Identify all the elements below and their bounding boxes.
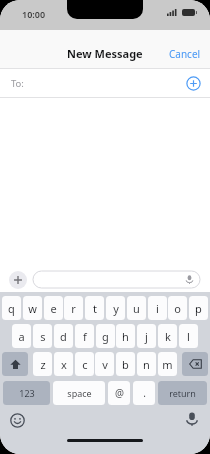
button[interactable]: Dictate [33,271,200,288]
button[interactable]: h [116,324,135,348]
button[interactable]: . [133,381,155,405]
button[interactable]: e [44,296,63,320]
button[interactable]: m [158,352,177,376]
button[interactable]: 123 [3,381,50,405]
staticText: k [165,329,171,344]
staticText: space [67,387,92,399]
button[interactable]: r [64,296,83,320]
staticText: o [174,301,181,316]
staticText: l [187,329,190,344]
button[interactable]: a [12,324,31,348]
staticText: u [133,301,140,316]
button[interactable]: return [158,381,207,405]
staticText: a [18,329,25,344]
staticText: @ [115,386,124,400]
staticText: Cancel [169,47,201,61]
button[interactable]: i [148,296,167,320]
staticText: t [93,301,97,316]
staticText: return [169,387,196,399]
button[interactable]: Add attachment [9,271,27,289]
button[interactable]: Emoji [10,413,25,428]
staticText: w [28,301,37,316]
staticText: q [8,301,15,316]
staticText: p [195,301,202,316]
button[interactable]: To: [0,69,210,98]
button[interactable]: c [75,352,94,376]
staticText: 123 [19,387,35,399]
staticText: n [143,357,150,372]
staticText: j [145,329,148,344]
button[interactable]: f [75,324,94,348]
staticText: m [162,357,173,372]
staticText: e [50,301,57,316]
staticText: v [102,357,108,372]
staticText: . [143,386,146,400]
button[interactable]: q [2,296,21,320]
button[interactable]: j [137,324,156,348]
button[interactable]: Add contact [186,76,201,91]
staticText: d [60,329,67,344]
staticText: New Message [67,46,143,61]
button[interactable]: u [127,296,146,320]
button[interactable]: o [168,296,187,320]
staticText: b [122,357,129,372]
staticText: 10:00 [22,8,46,20]
button[interactable]: k [158,324,177,348]
button[interactable]: y [106,296,125,320]
button[interactable]: space [53,381,105,405]
button[interactable]: l [179,324,198,348]
staticText: f [83,329,87,344]
button[interactable]: Cancel [160,41,210,67]
staticText: z [40,357,46,372]
staticText: g [102,329,109,344]
button[interactable]: Delete [182,352,208,376]
button[interactable]: n [137,352,156,376]
button[interactable]: t [85,296,104,320]
button[interactable]: d [54,324,73,348]
staticText: i [156,301,159,316]
button[interactable]: g [96,324,115,348]
button[interactable]: s [33,324,52,348]
button[interactable]: Shift [2,352,28,376]
staticText: r [71,301,76,316]
other: Dictate [185,275,194,284]
button[interactable]: w [23,296,42,320]
staticText: x [61,357,67,372]
button[interactable]: x [54,352,73,376]
button[interactable]: Dictation [185,412,199,426]
staticText: To: [11,77,24,90]
button[interactable]: b [116,352,135,376]
button[interactable]: @ [108,381,130,405]
staticText: s [40,329,46,344]
button[interactable]: v [95,352,114,376]
staticText: c [82,357,88,372]
button[interactable]: p [189,296,208,320]
staticText: h [122,329,129,344]
staticText: y [113,301,119,316]
button[interactable]: z [33,352,52,376]
